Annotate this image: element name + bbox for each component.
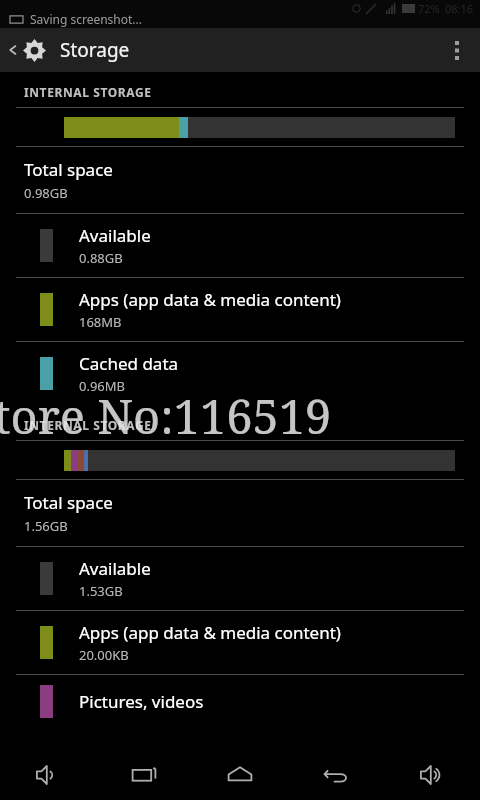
staticText: Total space <box>24 158 113 181</box>
button[interactable]: Volume down <box>0 750 96 800</box>
button[interactable]: Total space <box>0 480 480 546</box>
staticText: 1.53GB <box>79 582 123 600</box>
button[interactable]: Available <box>0 214 480 277</box>
button[interactable]: Home <box>192 750 288 800</box>
button[interactable]: Navigate up <box>0 37 434 63</box>
staticText: Available <box>79 224 151 247</box>
staticText: tore No:116519 <box>0 384 332 448</box>
button[interactable]: Apps (app data & media content) <box>0 278 480 341</box>
staticText: Apps (app data & media content) <box>79 621 341 644</box>
button[interactable]: Apps (app data & media content) <box>0 611 480 674</box>
staticText: Total space <box>24 491 113 514</box>
staticText: 0.96MB <box>79 377 126 395</box>
button[interactable]: More options <box>434 28 480 72</box>
staticText: Pictures, videos <box>79 690 204 713</box>
staticText: 0.88GB <box>79 249 123 267</box>
staticText: 20.00KB <box>79 646 129 664</box>
button[interactable]: Volume up <box>384 750 480 800</box>
staticText: Saving screenshot... <box>30 11 143 27</box>
staticText: 0.98GB <box>24 184 68 202</box>
staticText: Storage <box>60 37 130 63</box>
button[interactable]: Total space <box>0 147 480 213</box>
button[interactable]: Pictures, videos <box>0 675 480 728</box>
button[interactable]: Back <box>288 750 384 800</box>
button[interactable]: Recent apps <box>96 750 192 800</box>
staticText: Apps (app data & media content) <box>79 288 341 311</box>
staticText: INTERNAL STORAGE <box>24 417 152 433</box>
staticText: Cached data <box>79 352 179 375</box>
staticText: Available <box>79 557 151 580</box>
button[interactable]: Cached data <box>0 342 480 405</box>
staticText: 72% <box>418 1 440 16</box>
staticText: 08:16 <box>445 1 474 16</box>
staticText: 1.56GB <box>24 517 68 535</box>
staticText: 168MB <box>79 313 122 331</box>
staticText: INTERNAL STORAGE <box>24 84 152 100</box>
button[interactable]: Available <box>0 547 480 610</box>
